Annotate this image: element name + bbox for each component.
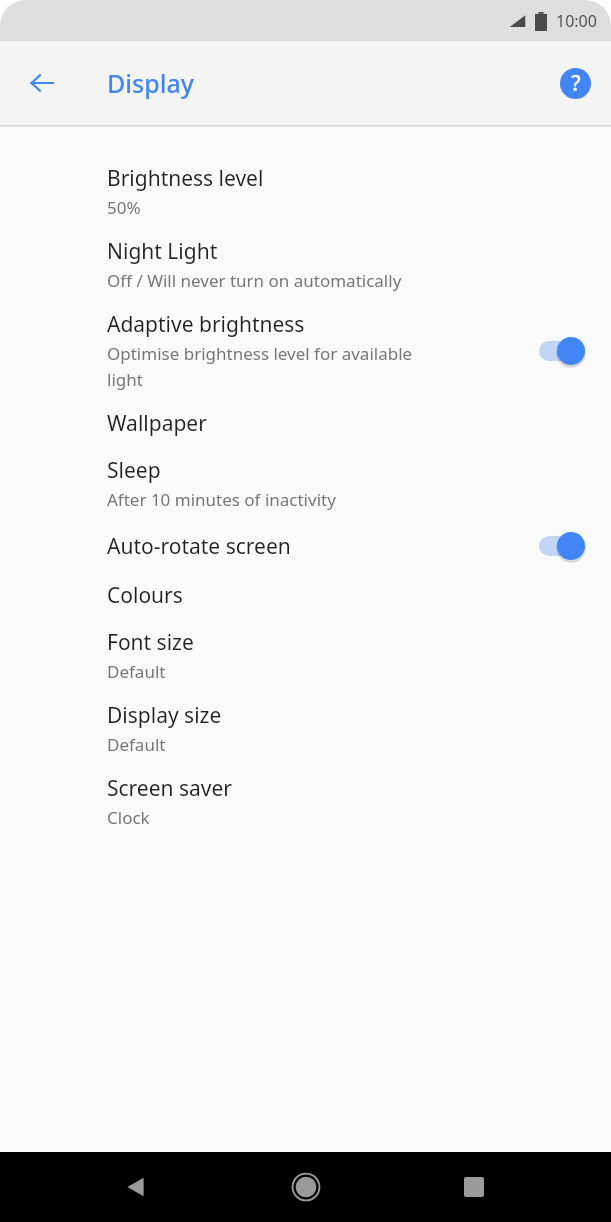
staticText: 10:00 xyxy=(556,10,597,32)
staticText: Auto-rotate screen xyxy=(107,532,291,561)
staticText: Screen saver xyxy=(107,774,233,803)
staticText: Font size xyxy=(107,628,194,657)
staticText: ? xyxy=(571,69,581,98)
staticText: Display xyxy=(107,66,194,100)
staticText: After 10 minutes of inactivity xyxy=(107,488,336,511)
button[interactable]: Display size xyxy=(0,692,611,765)
button[interactable]: Wallpaper xyxy=(0,400,611,447)
button[interactable]: Sleep xyxy=(0,447,611,520)
staticText: Colours xyxy=(107,581,183,610)
staticText: Adaptive brightness xyxy=(107,310,305,339)
button[interactable]: Home xyxy=(282,1163,330,1211)
staticText: Night Light xyxy=(107,237,218,266)
staticText: 50% xyxy=(107,196,141,219)
button[interactable]: Screen saver xyxy=(0,765,611,838)
staticText: Brightness level xyxy=(107,164,264,193)
staticText: Off / Will never turn on automatically xyxy=(107,269,402,292)
button[interactable]: Back xyxy=(18,59,66,107)
staticText: Default xyxy=(107,733,166,756)
staticText: Sleep xyxy=(107,456,161,485)
button[interactable]: Help xyxy=(551,59,599,107)
button[interactable] xyxy=(539,334,589,368)
button[interactable]: Font size xyxy=(0,619,611,692)
button[interactable]: Brightness level xyxy=(0,155,611,228)
staticText: Display size xyxy=(107,701,222,730)
button[interactable]: Night Light xyxy=(0,228,611,301)
staticText: Optimise brightness level for available … xyxy=(107,342,413,391)
button[interactable]: Colours xyxy=(0,572,611,619)
button[interactable] xyxy=(539,529,589,563)
staticText: Clock xyxy=(107,806,150,829)
staticText: Default xyxy=(107,660,166,683)
button[interactable]: Back xyxy=(113,1163,161,1211)
staticText: Wallpaper xyxy=(107,409,207,438)
button[interactable]: Auto-rotate screen xyxy=(0,520,611,572)
button[interactable]: Recent apps xyxy=(450,1163,498,1211)
button[interactable]: Adaptive brightness xyxy=(0,301,611,400)
